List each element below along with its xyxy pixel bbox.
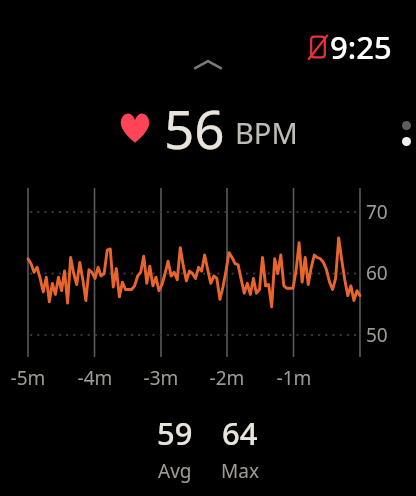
- staticText: BPM: [235, 113, 298, 152]
- staticText: 59: [157, 412, 193, 454]
- staticText: 50: [366, 322, 388, 348]
- staticText: Max: [221, 458, 259, 484]
- button[interactable]: 59: [0, 412, 416, 484]
- button[interactable]: 56: [0, 92, 416, 164]
- staticText: -2m: [203, 365, 251, 391]
- staticText: -4m: [71, 365, 119, 391]
- button[interactable]: 70: [0, 182, 416, 382]
- staticText: 56: [164, 92, 225, 164]
- staticText: -3m: [137, 365, 185, 391]
- staticText: 9:25: [330, 26, 392, 68]
- staticText: -1m: [270, 365, 318, 391]
- staticText: -5m: [4, 365, 52, 391]
- staticText: Avg: [158, 458, 192, 484]
- staticText: 60: [366, 260, 388, 286]
- staticText: 70: [366, 199, 388, 225]
- staticText: 64: [222, 412, 258, 454]
- other: Phone disconnected: [308, 34, 328, 60]
- other: Scroll up: [192, 58, 224, 72]
